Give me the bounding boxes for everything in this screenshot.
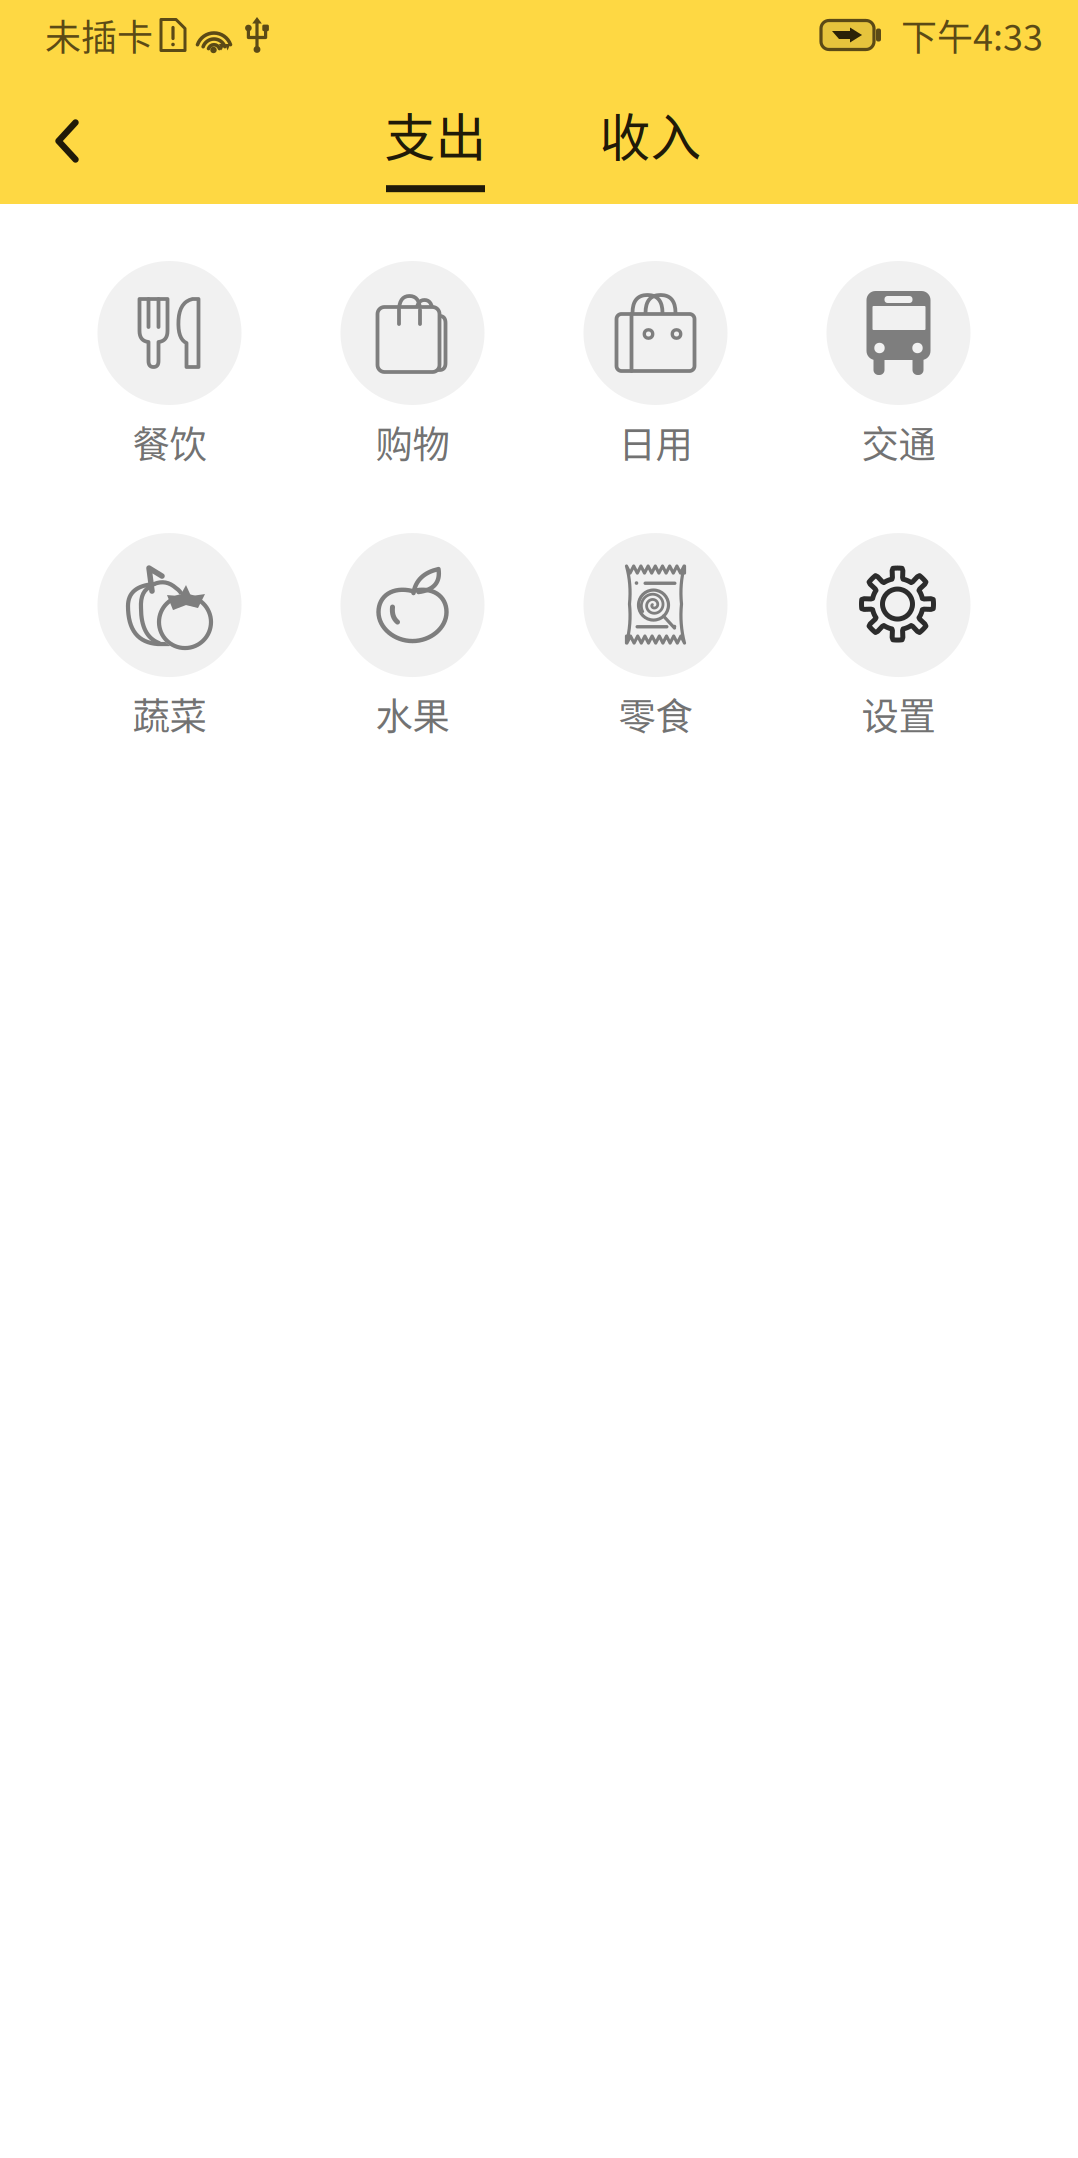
- button[interactable]: 购物: [291, 261, 534, 477]
- button[interactable]: Back: [0, 78, 103, 204]
- staticText: 收入: [599, 98, 701, 171]
- staticText: 未插卡: [45, 9, 153, 61]
- button[interactable]: 水果: [291, 533, 534, 749]
- button[interactable]: 日用: [534, 261, 777, 477]
- staticText: 日用: [618, 415, 692, 469]
- staticText: 餐饮: [132, 415, 206, 469]
- staticText: 蔬菜: [132, 687, 206, 741]
- staticText: 支出: [384, 98, 486, 171]
- staticText: 水果: [375, 687, 449, 741]
- button[interactable]: 零食: [534, 533, 777, 749]
- staticText: 零食: [618, 687, 692, 741]
- staticText: 下午4:33: [901, 9, 1043, 61]
- button[interactable]: 餐饮: [48, 261, 291, 477]
- staticText: 购物: [375, 415, 449, 469]
- button[interactable]: 收入: [588, 98, 713, 194]
- button[interactable]: 支出: [373, 98, 498, 194]
- button[interactable]: 交通: [777, 261, 1020, 477]
- button[interactable]: 设置: [777, 533, 1020, 749]
- staticText: 交通: [861, 415, 935, 469]
- button[interactable]: 蔬菜: [48, 533, 291, 749]
- staticText: 设置: [861, 687, 935, 741]
